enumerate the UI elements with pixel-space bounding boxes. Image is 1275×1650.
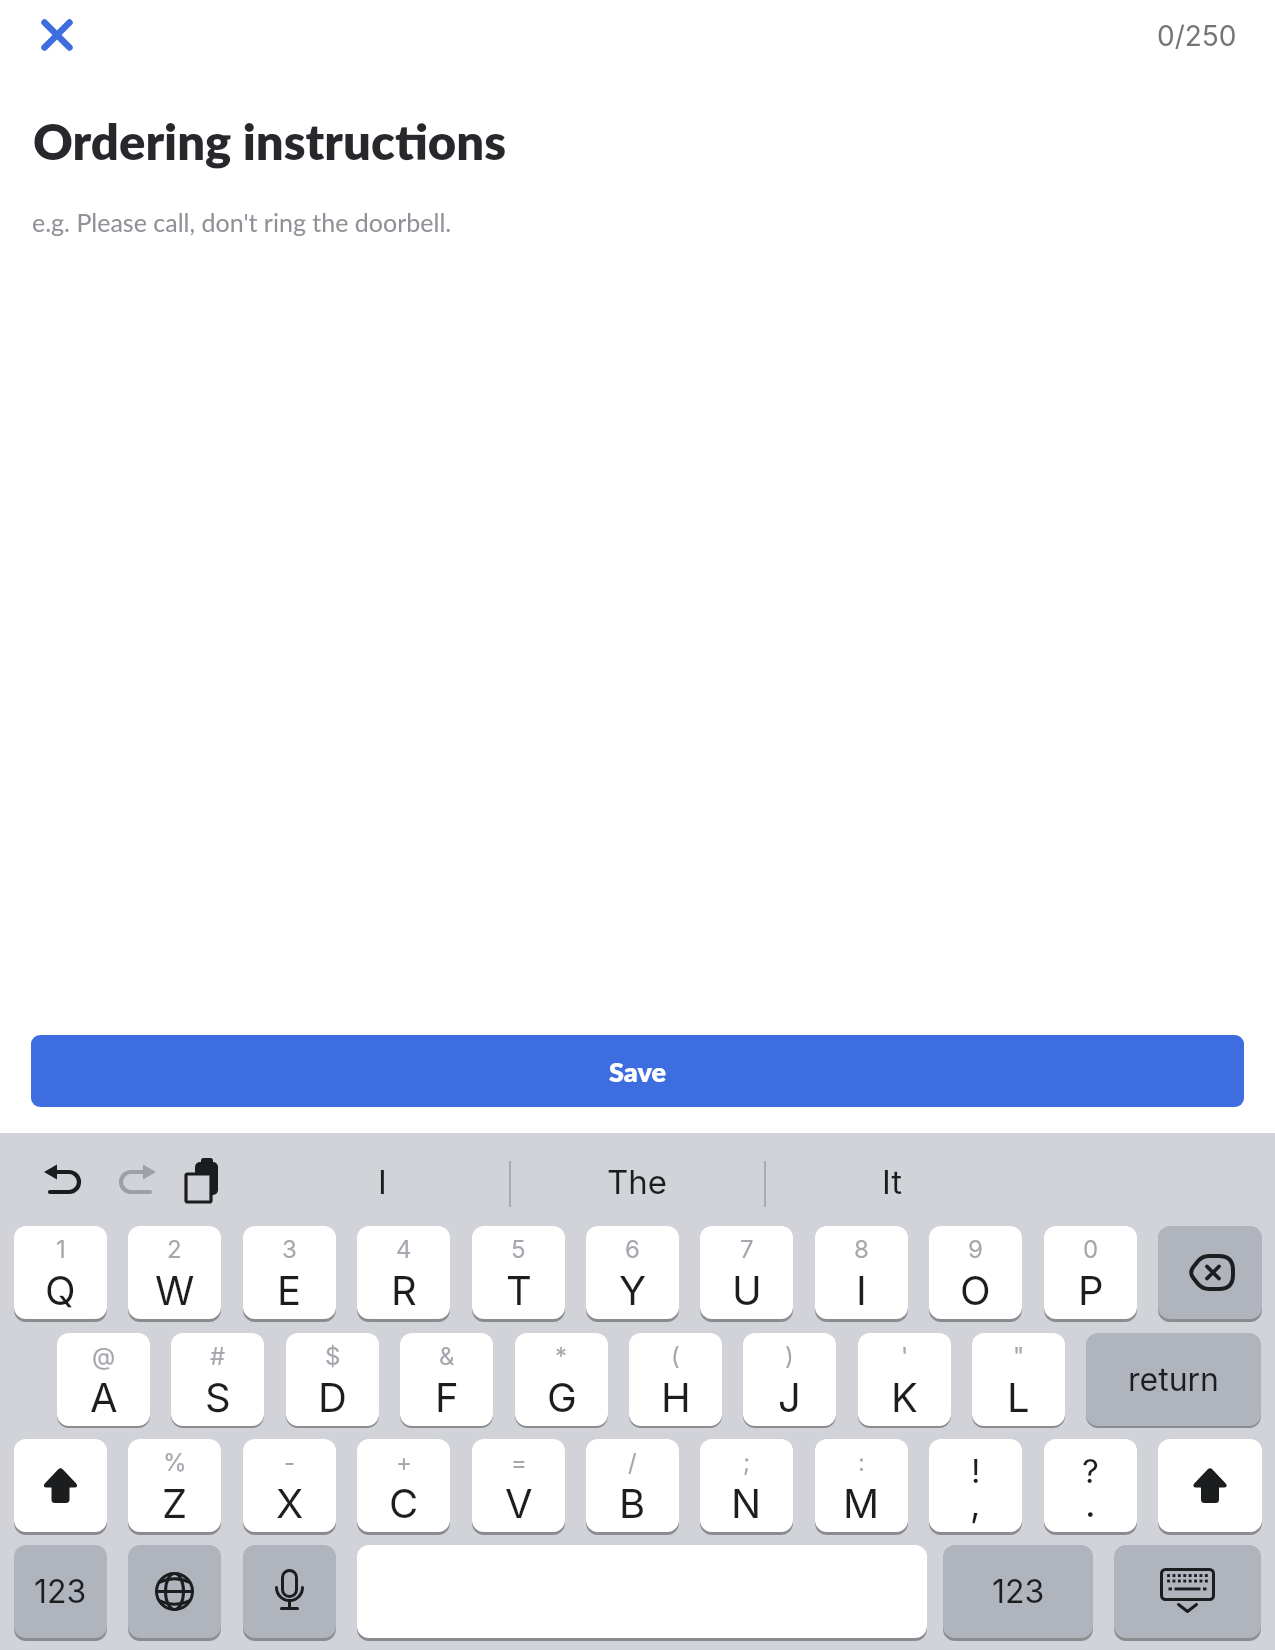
staticText: # [210,1342,226,1371]
staticText: ? [1082,1451,1099,1491]
button[interactable]: * [515,1333,608,1426]
staticText: 7 [740,1235,754,1264]
staticText: e.g. Please call, don't ring the doorbel… [32,207,452,237]
button[interactable] [243,1545,336,1638]
button[interactable]: - [243,1439,336,1532]
button[interactable]: ! [929,1439,1022,1532]
staticText: 8 [854,1235,869,1264]
button[interactable]: + [357,1439,450,1532]
staticText: - [284,1448,296,1477]
button[interactable]: I [255,1153,510,1211]
button[interactable] [0,185,1275,1015]
button[interactable] [1114,1545,1261,1638]
button[interactable]: ; [700,1439,793,1532]
staticText: T [506,1266,532,1314]
staticText: J [778,1373,801,1421]
staticText: E [277,1266,302,1314]
staticText: G [547,1373,577,1421]
staticText: 0 [1083,1235,1099,1264]
button[interactable]: 7 [700,1226,793,1319]
staticText: ; [743,1448,751,1477]
staticText: F [435,1373,459,1421]
button[interactable]: It [765,1153,1020,1211]
staticText: = [511,1448,527,1477]
staticText: R [391,1266,417,1314]
staticText: The [607,1162,668,1202]
staticText: 123 [992,1572,1045,1611]
button[interactable]: 2 [128,1226,221,1319]
staticText: : [858,1448,865,1477]
button[interactable]: 5 [472,1226,565,1319]
button[interactable]: " [972,1333,1065,1426]
staticText: 6 [625,1235,640,1264]
staticText: , [970,1481,981,1526]
staticText: It [882,1162,903,1202]
staticText: P [1078,1266,1104,1314]
button[interactable]: 9 [929,1226,1022,1319]
button[interactable]: 123 [14,1545,107,1638]
staticText: M [843,1479,880,1527]
button[interactable]: & [400,1333,493,1426]
button[interactable] [34,1149,94,1209]
staticText: Save [609,1055,667,1087]
button[interactable]: # [171,1333,264,1426]
staticText: $ [325,1342,341,1371]
button[interactable]: 1 [14,1226,107,1319]
button[interactable]: % [128,1439,221,1532]
staticText: tions [395,112,507,171]
button[interactable]: ? [1044,1439,1137,1532]
button[interactable]: 123 [943,1545,1093,1638]
staticText: 5 [511,1235,526,1264]
staticText: U [732,1266,762,1314]
staticText: Q [45,1266,76,1314]
button[interactable]: ) [743,1333,836,1426]
button[interactable]: The [510,1153,765,1211]
button[interactable]: 8 [815,1226,908,1319]
staticText: % [163,1448,187,1477]
button[interactable]: return [1086,1333,1261,1426]
button[interactable]: Save [31,1035,1244,1107]
button[interactable]: : [815,1439,908,1532]
staticText: W [155,1266,195,1314]
staticText: A [90,1373,118,1421]
button[interactable] [106,1149,166,1209]
staticText: 1 [56,1235,66,1264]
staticText: . [1085,1481,1096,1526]
staticText: Y [619,1266,647,1314]
button[interactable]: $ [286,1333,379,1426]
staticText: 3 [282,1235,297,1264]
staticText: C [389,1479,419,1527]
staticText: + [396,1448,412,1477]
button[interactable]: ' [858,1333,951,1426]
staticText: H [661,1373,691,1421]
staticText: B [619,1479,646,1527]
staticText: @ [92,1342,116,1371]
button[interactable] [30,8,84,62]
staticText: & [439,1342,455,1371]
button[interactable]: = [472,1439,565,1532]
staticText: 9 [968,1235,983,1264]
staticText: * [555,1342,568,1371]
staticText: 4 [396,1235,412,1264]
staticText: 2 [167,1235,182,1264]
staticText: N [731,1479,762,1527]
button[interactable] [1158,1439,1262,1532]
button[interactable] [1158,1226,1262,1319]
button[interactable] [357,1545,927,1638]
staticText: K [891,1373,918,1421]
staticText: I [856,1266,867,1314]
staticText: V [505,1479,533,1527]
button[interactable]: 3 [243,1226,336,1319]
staticText: D [318,1373,347,1421]
button[interactable] [172,1149,232,1209]
button[interactable]: 6 [586,1226,679,1319]
button[interactable]: / [586,1439,679,1532]
staticText: I [378,1162,387,1202]
button[interactable] [14,1439,107,1532]
button[interactable]: ( [629,1333,722,1426]
staticText: / [628,1448,637,1477]
button[interactable] [128,1545,221,1638]
button[interactable]: 4 [357,1226,450,1319]
button[interactable]: 0 [1044,1226,1137,1319]
button[interactable]: @ [57,1333,150,1426]
